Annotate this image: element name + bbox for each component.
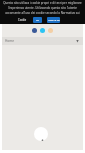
button[interactable]: Facebook [32, 28, 37, 33]
button[interactable]: Home [2, 37, 83, 45]
button[interactable]: Share [48, 28, 53, 33]
button[interactable]: Twitter [40, 28, 45, 33]
staticText: Home [5, 39, 15, 43]
staticText: Questo sito utilizza i cookie propri e d… [0, 1, 85, 14]
button[interactable]: Cookie [18, 18, 27, 22]
button[interactable]: Ok [33, 17, 42, 23]
staticText: Leggi di piu [48, 19, 60, 22]
staticText: Ok [36, 19, 39, 22]
button[interactable]: Leggi di piu [47, 17, 60, 23]
